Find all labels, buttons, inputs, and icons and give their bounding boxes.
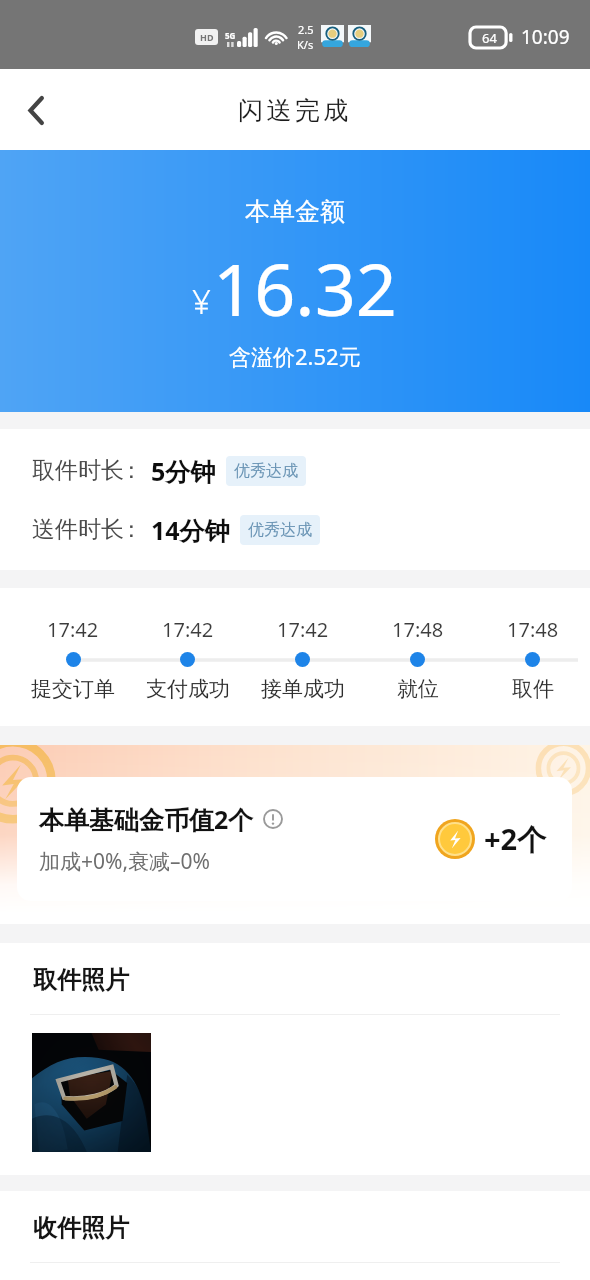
button[interactable]: Back: [0, 74, 72, 146]
staticText: 优秀达成: [234, 461, 298, 481]
staticText: 就位: [397, 676, 439, 702]
staticText: 取件时长: [32, 456, 124, 485]
staticText: 17:42: [277, 616, 329, 643]
staticText: +2个: [484, 819, 547, 859]
staticText: ：: [120, 515, 143, 544]
staticText: 17:42: [47, 616, 99, 643]
staticText: 含溢价2.52元: [229, 341, 361, 371]
staticText: 提交订单: [31, 676, 115, 702]
staticText: K/s: [297, 37, 314, 52]
staticText: 收件照片: [33, 1213, 129, 1243]
staticText: HD: [200, 31, 214, 43]
staticText: 5分钟: [151, 454, 216, 488]
staticText: 17:48: [507, 616, 559, 643]
staticText: 取件照片: [33, 965, 129, 995]
staticText: ¥: [192, 279, 211, 324]
staticText: 17:48: [392, 616, 444, 643]
staticText: 14分钟: [151, 513, 230, 547]
button[interactable]: 本单基础金币值2个: [17, 777, 572, 901]
staticText: 5G: [225, 30, 236, 41]
staticText: 闪送完成: [238, 95, 352, 126]
staticText: 本单基础金币值2个: [39, 802, 254, 836]
staticText: 取件: [512, 676, 554, 702]
staticText: 16.32: [213, 239, 398, 337]
staticText: 支付成功: [146, 676, 230, 702]
staticText: 加成+0%,衰减–0%: [39, 847, 211, 876]
staticText: 17:42: [162, 616, 214, 643]
staticText: 64: [482, 29, 497, 47]
staticText: ：: [120, 456, 143, 485]
staticText: 10:09: [521, 24, 570, 50]
staticText: 本单金额: [245, 196, 345, 227]
staticText: 送件时长: [32, 515, 124, 544]
staticText: 接单成功: [261, 676, 345, 702]
staticText: 优秀达成: [248, 520, 312, 540]
staticText: 2.5: [298, 22, 314, 37]
button[interactable]: Pickup photo: [32, 1033, 151, 1152]
